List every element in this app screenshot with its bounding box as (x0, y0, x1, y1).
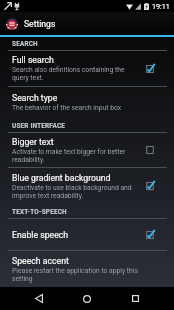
button[interactable]: Toggle (141, 141, 159, 159)
button[interactable]: Toggle (141, 177, 159, 195)
staticText: Please restart the application to apply … (12, 267, 152, 283)
staticText: The behavior of the search input box (12, 104, 122, 112)
staticText: Full search (12, 55, 54, 65)
button[interactable]: Bigger text (0, 133, 174, 167)
staticText: Bigger text (12, 137, 54, 147)
button[interactable]: Toggle (141, 60, 159, 78)
button[interactable]: Back (15, 287, 63, 310)
staticText: Search type (12, 93, 58, 103)
staticText: Speech accent (12, 256, 69, 266)
staticText: Blue gradient background (12, 173, 111, 183)
button[interactable]: Enable speech (0, 219, 174, 250)
button[interactable]: Full search (0, 51, 174, 86)
staticText: Settings (24, 19, 56, 29)
staticText: 19:11 (152, 2, 170, 10)
staticText: Enable speech (12, 230, 69, 240)
button[interactable]: Settings (0, 12, 174, 35)
button[interactable]: Blue gradient background (0, 168, 174, 204)
button[interactable]: Speech accent (0, 251, 174, 287)
staticText: TEXT-TO-SPEECH (12, 208, 67, 216)
staticText: Search also definitions containing the q… (12, 66, 140, 82)
staticText: SEARCH (12, 40, 38, 48)
staticText: USER INTERFACE (12, 122, 66, 130)
staticText: Activate to make text bigger for better … (12, 148, 140, 164)
button[interactable]: Search type (0, 87, 174, 118)
staticText: Deactivate to use black background and i… (12, 184, 140, 200)
button[interactable]: Home (63, 287, 111, 310)
button[interactable]: Recents (111, 287, 159, 310)
button[interactable]: Toggle (141, 226, 159, 244)
